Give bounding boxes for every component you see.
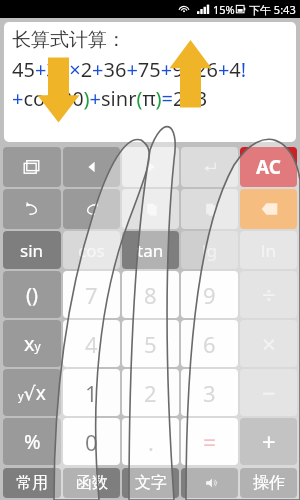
button[interactable]: tan (122, 231, 179, 269)
staticText: 15% (213, 2, 235, 17)
staticText: 1 (85, 378, 98, 408)
button[interactable]: y-th root of x (3, 369, 61, 416)
staticText: y√x (18, 380, 46, 406)
button[interactable]: Copy (122, 189, 179, 229)
button[interactable]: Windows (3, 147, 61, 187)
staticText: ÷ (262, 278, 276, 311)
staticText: lg (202, 239, 217, 262)
staticText: xy (24, 330, 41, 357)
button[interactable]: cos (63, 231, 120, 269)
staticText: 0 (85, 427, 98, 457)
button[interactable]: 4 (63, 320, 120, 367)
button[interactable]: 常用 (3, 468, 61, 498)
button[interactable]: Move right (122, 147, 179, 187)
staticText: 函数 (76, 473, 108, 493)
button[interactable]: sin (3, 231, 61, 269)
staticText: + (262, 425, 276, 458)
button[interactable]: Enter (181, 147, 238, 187)
button[interactable]: . (122, 418, 179, 465)
button[interactable]: 函数 (63, 468, 120, 498)
button[interactable]: Paste (181, 189, 238, 229)
staticText: × (262, 327, 276, 360)
button[interactable]: Sound (181, 468, 238, 498)
staticText: % (24, 428, 41, 455)
button[interactable]: 9 (181, 271, 238, 318)
button[interactable]: 文字 (122, 468, 179, 498)
button[interactable]: % (3, 418, 61, 465)
button[interactable]: = (181, 418, 238, 465)
button[interactable]: 1 (63, 369, 120, 416)
staticText: AC (256, 154, 281, 180)
button[interactable]: 7 (63, 271, 120, 318)
button[interactable]: 5 (122, 320, 179, 367)
staticText: 操作 (253, 473, 285, 493)
staticText: = (203, 426, 217, 457)
staticText: 9 (203, 280, 216, 310)
button[interactable]: Undo (3, 189, 61, 229)
staticText: 3 (203, 378, 216, 408)
staticText: () (26, 281, 38, 308)
staticText: 7 (85, 280, 98, 310)
button[interactable]: 8 (122, 271, 179, 318)
button[interactable]: Backspace (240, 189, 297, 229)
button[interactable]: 3 (181, 369, 238, 416)
staticText: cos (78, 239, 105, 262)
staticText: . (148, 427, 154, 457)
staticText: sin (20, 239, 44, 262)
staticText: 6 (203, 329, 216, 359)
staticText: 45+32×2+36+75+9+26+4! (12, 56, 247, 83)
button[interactable]: AC (240, 147, 297, 187)
button[interactable]: 0 (63, 418, 120, 465)
staticText: 5 (144, 329, 157, 359)
staticText: tan (137, 239, 164, 262)
staticText: 下午 5:43 (249, 2, 296, 17)
button[interactable]: Redo (63, 189, 120, 229)
staticText: 4 (85, 329, 98, 359)
button[interactable]: () (3, 271, 61, 318)
staticText: 8 (144, 280, 157, 310)
button[interactable]: Move left (63, 147, 120, 187)
staticText: 常用 (16, 473, 48, 493)
button[interactable]: 6 (181, 320, 238, 367)
button[interactable]: 操作 (240, 468, 297, 498)
button[interactable]: 2 (122, 369, 179, 416)
button[interactable]: lg (181, 231, 238, 269)
staticText: ln (261, 239, 276, 262)
staticText: 文字 (135, 473, 167, 493)
button[interactable]: x to the power y (3, 320, 61, 367)
staticText: +cos(90)+sinr(π)=273 (12, 85, 208, 112)
staticText: 2 (144, 378, 157, 408)
button[interactable]: + (240, 418, 297, 465)
staticText: 长算式计算： (12, 28, 126, 52)
